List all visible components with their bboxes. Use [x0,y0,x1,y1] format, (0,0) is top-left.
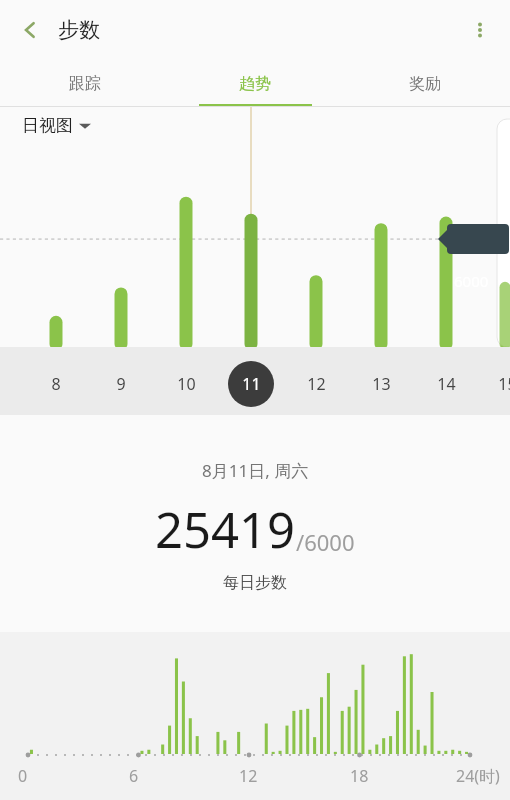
staticText: 12 [239,765,258,787]
button[interactable]: Back [8,8,52,52]
staticText: 24(时) [456,765,500,787]
staticText: 日视图 [22,115,73,136]
button[interactable]: 15 [487,363,510,405]
staticText: 12 [307,373,326,395]
button[interactable]: 跟踪 [0,60,170,107]
button[interactable]: 8 [36,363,76,405]
staticText: 8月11日, 周六 [202,459,309,482]
staticText: 0 [18,765,28,787]
button[interactable]: 14 [426,363,466,405]
staticText: 每日步数 [223,573,287,593]
staticText: 18 [350,765,369,787]
staticText: 奖励 [409,74,441,94]
staticText: 10 [177,373,196,395]
staticText: 步数 [58,17,100,43]
button[interactable]: 趋势 [170,60,340,107]
staticText: 趋势 [239,74,271,94]
button[interactable]: 日视图 [22,115,91,136]
staticText: /6000 [296,527,355,557]
staticText: 11 [242,373,261,395]
button[interactable]: More options [458,8,502,52]
button[interactable]: 12 [296,363,336,405]
staticText: 25419 [155,496,296,563]
button[interactable]: 11 [231,363,271,405]
staticText: 9 [116,373,126,395]
staticText: 6 [129,765,139,787]
staticText: 跟踪 [69,74,101,94]
staticText: 14 [437,373,456,395]
button[interactable]: 9 [101,363,141,405]
staticText: 15 [498,373,510,395]
staticText: 8 [51,373,61,395]
button[interactable]: 奖励 [340,60,510,107]
button[interactable]: 10 [166,363,206,405]
button[interactable]: 13 [361,363,401,405]
staticText: 13 [372,373,391,395]
